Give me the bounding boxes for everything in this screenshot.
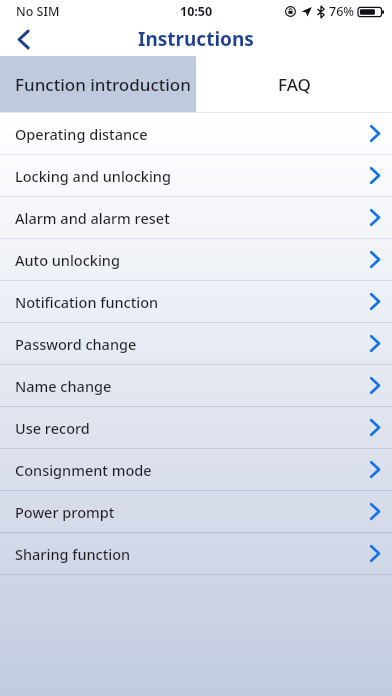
staticText: 10:50 <box>180 3 213 20</box>
button[interactable]: Back <box>0 22 46 56</box>
button[interactable]: Sharing function <box>0 533 392 574</box>
staticText: Sharing function <box>15 544 358 564</box>
button[interactable]: Locking and unlocking <box>0 155 392 196</box>
button[interactable]: FAQ <box>196 56 392 112</box>
button[interactable]: Operating distance <box>0 113 392 154</box>
staticText: Name change <box>15 376 358 396</box>
staticText: 76% <box>329 3 354 20</box>
staticText: Operating distance <box>15 124 358 144</box>
button[interactable]: Notification function <box>0 281 392 322</box>
staticText: Use record <box>15 418 358 438</box>
staticText: Notification function <box>15 292 358 312</box>
button[interactable]: Auto unlocking <box>0 239 392 280</box>
staticText: Auto unlocking <box>15 250 358 270</box>
staticText: Locking and unlocking <box>15 166 358 186</box>
button[interactable]: Use record <box>0 407 392 448</box>
staticText: Function introduction <box>15 73 191 96</box>
button[interactable]: Function introduction <box>0 56 196 112</box>
staticText: Instructions <box>138 26 254 52</box>
staticText: FAQ <box>278 73 311 96</box>
staticText: No SIM <box>16 3 60 20</box>
staticText: Alarm and alarm reset <box>15 208 358 228</box>
button[interactable]: Consignment mode <box>0 449 392 490</box>
staticText: Password change <box>15 334 358 354</box>
staticText: Power prompt <box>15 502 358 522</box>
button[interactable]: Name change <box>0 365 392 406</box>
button[interactable]: Power prompt <box>0 491 392 532</box>
staticText: Consignment mode <box>15 460 358 480</box>
button[interactable]: Password change <box>0 323 392 364</box>
button[interactable]: Alarm and alarm reset <box>0 197 392 238</box>
